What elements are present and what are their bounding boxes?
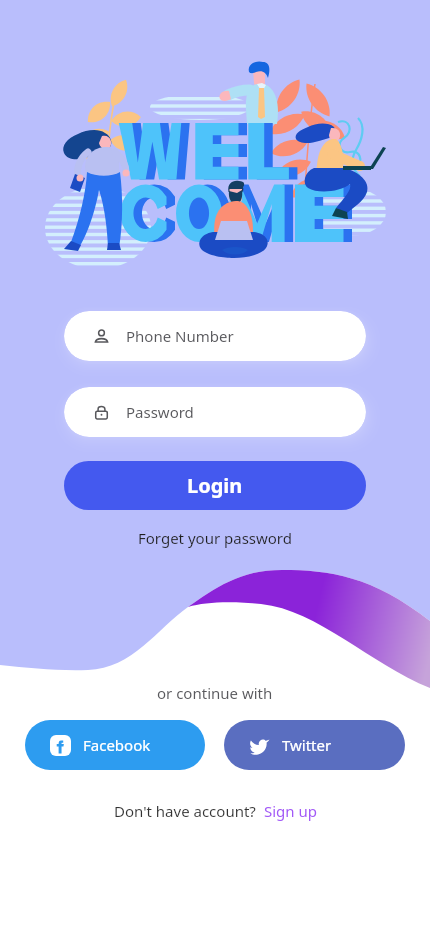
button[interactable]: Phone Number (64, 311, 366, 361)
button[interactable]: Sign up (264, 801, 317, 821)
button[interactable]: Forget your password (138, 528, 292, 548)
staticText: Phone Number (126, 326, 234, 346)
button[interactable]: Facebook (25, 720, 205, 770)
button[interactable]: Password (64, 387, 366, 437)
staticText: Facebook (83, 735, 151, 755)
button[interactable]: Twitter (224, 720, 405, 770)
staticText: Password (126, 402, 194, 422)
button[interactable]: Login (64, 461, 366, 510)
staticText: or continue with (157, 683, 273, 703)
staticText: Twitter (282, 735, 332, 755)
staticText: Login (187, 472, 243, 499)
staticText: Don't have account? (114, 801, 256, 821)
